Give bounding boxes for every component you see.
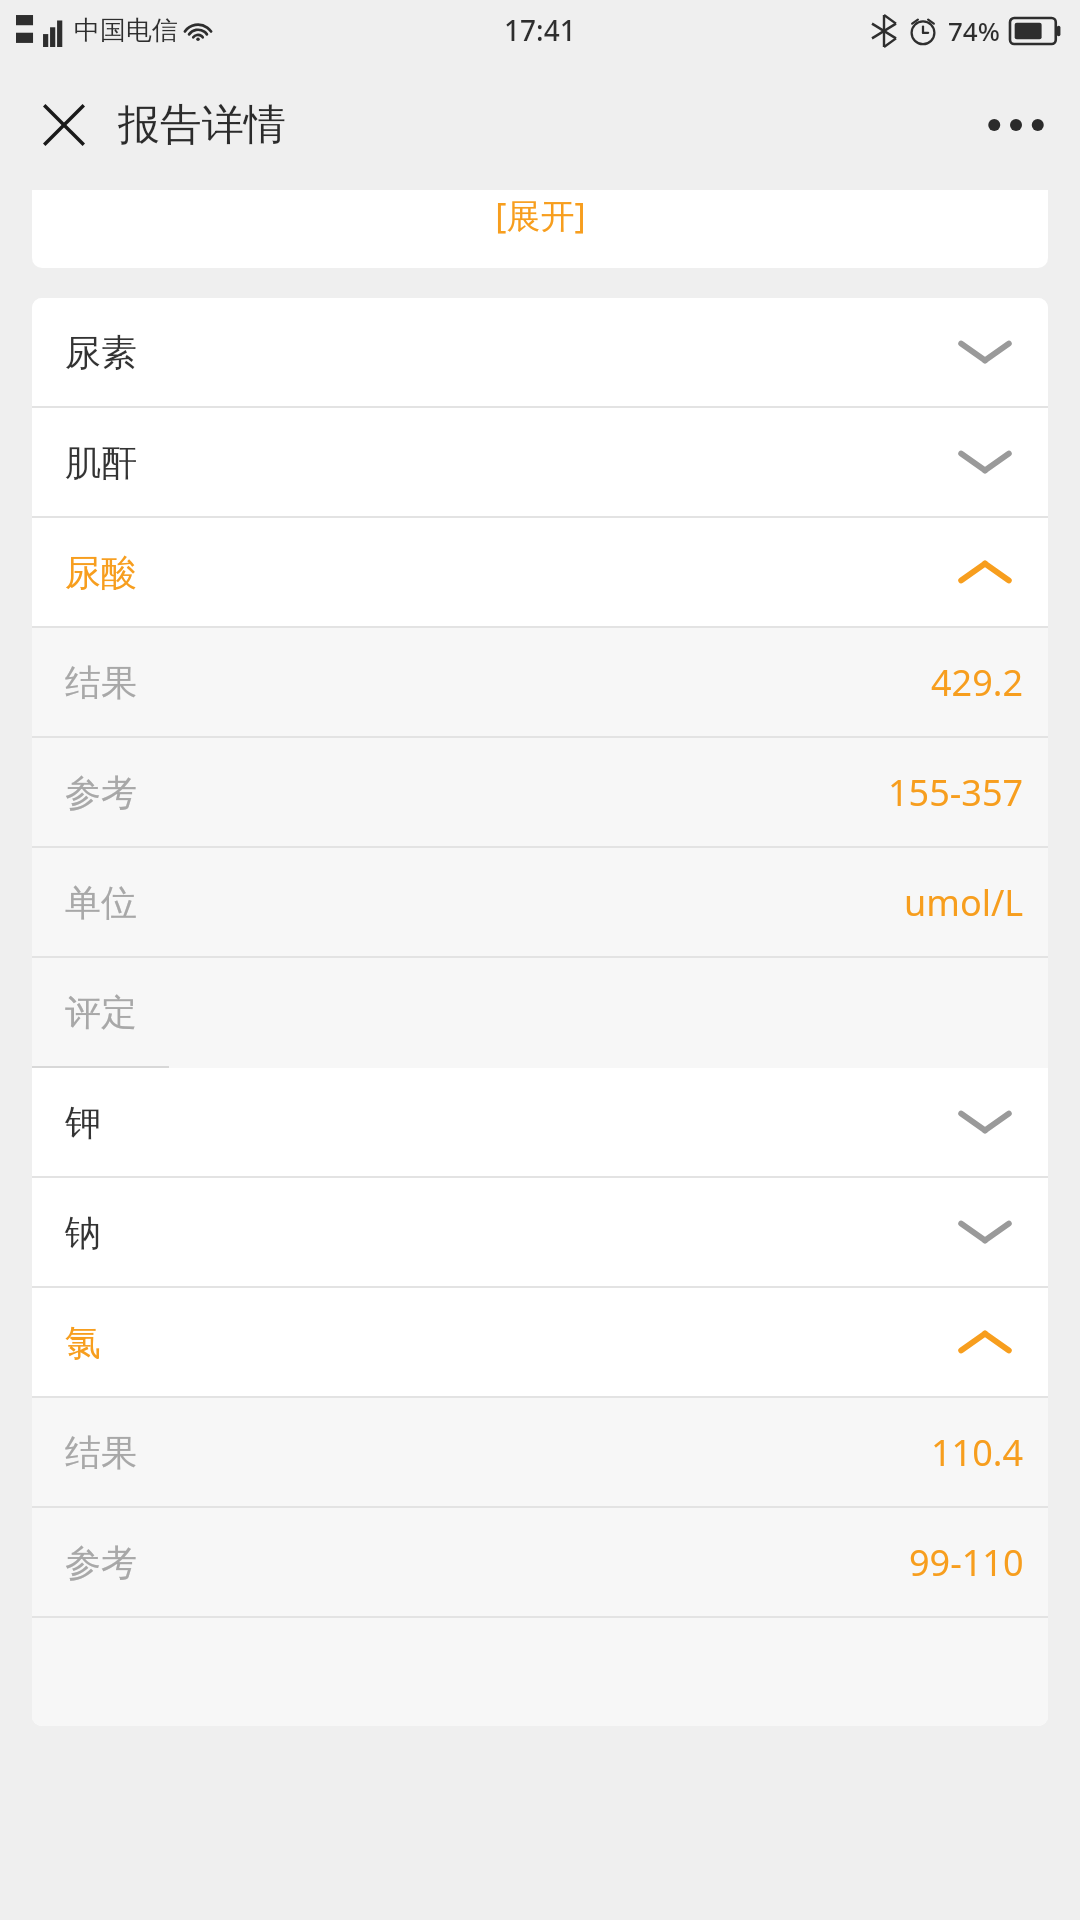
staticText: 钾 bbox=[65, 1100, 101, 1145]
staticText: 评定 bbox=[65, 990, 137, 1035]
staticText: 尿酸 bbox=[65, 550, 137, 595]
staticText: 中国电信 bbox=[74, 14, 178, 47]
staticText: 155-357 bbox=[888, 768, 1024, 817]
staticText: umol/L bbox=[904, 878, 1024, 927]
button[interactable]: 肌酐 bbox=[32, 408, 1048, 516]
staticText: [展开] bbox=[495, 192, 586, 238]
staticText: 参考 bbox=[65, 770, 137, 815]
staticText: 17:41 bbox=[504, 11, 576, 49]
button[interactable]: 单位 bbox=[32, 848, 1048, 956]
staticText: 报告详情 bbox=[118, 99, 286, 152]
staticText: 429.2 bbox=[931, 658, 1024, 707]
button[interactable]: [展开] bbox=[32, 190, 1048, 268]
staticText: 肌酐 bbox=[65, 440, 137, 485]
button[interactable]: 更多 bbox=[974, 83, 1058, 167]
staticText: 参考 bbox=[65, 1540, 137, 1585]
staticText: 99-110 bbox=[909, 1538, 1024, 1587]
button[interactable]: 参考 bbox=[32, 738, 1048, 846]
staticText: 74% bbox=[948, 13, 1000, 48]
button[interactable]: 参考 bbox=[32, 1508, 1048, 1616]
staticText: 尿素 bbox=[65, 330, 137, 375]
staticText: 单位 bbox=[65, 880, 137, 925]
staticText: 钠 bbox=[65, 1210, 101, 1255]
staticText: 氯 bbox=[65, 1320, 101, 1365]
button[interactable]: 关闭 bbox=[22, 83, 106, 167]
staticText: 110.4 bbox=[931, 1428, 1024, 1477]
button[interactable]: 钠 bbox=[32, 1178, 1048, 1286]
button[interactable]: 尿酸 bbox=[32, 518, 1048, 626]
button[interactable]: 氯 bbox=[32, 1288, 1048, 1396]
button[interactable]: 结果 bbox=[32, 628, 1048, 736]
staticText: 结果 bbox=[65, 1430, 137, 1475]
button[interactable]: 结果 bbox=[32, 1398, 1048, 1506]
button[interactable]: 钾 bbox=[32, 1068, 1048, 1176]
button[interactable]: 尿素 bbox=[32, 298, 1048, 406]
button[interactable]: 评定 bbox=[32, 958, 1048, 1066]
staticText: 结果 bbox=[65, 660, 137, 705]
